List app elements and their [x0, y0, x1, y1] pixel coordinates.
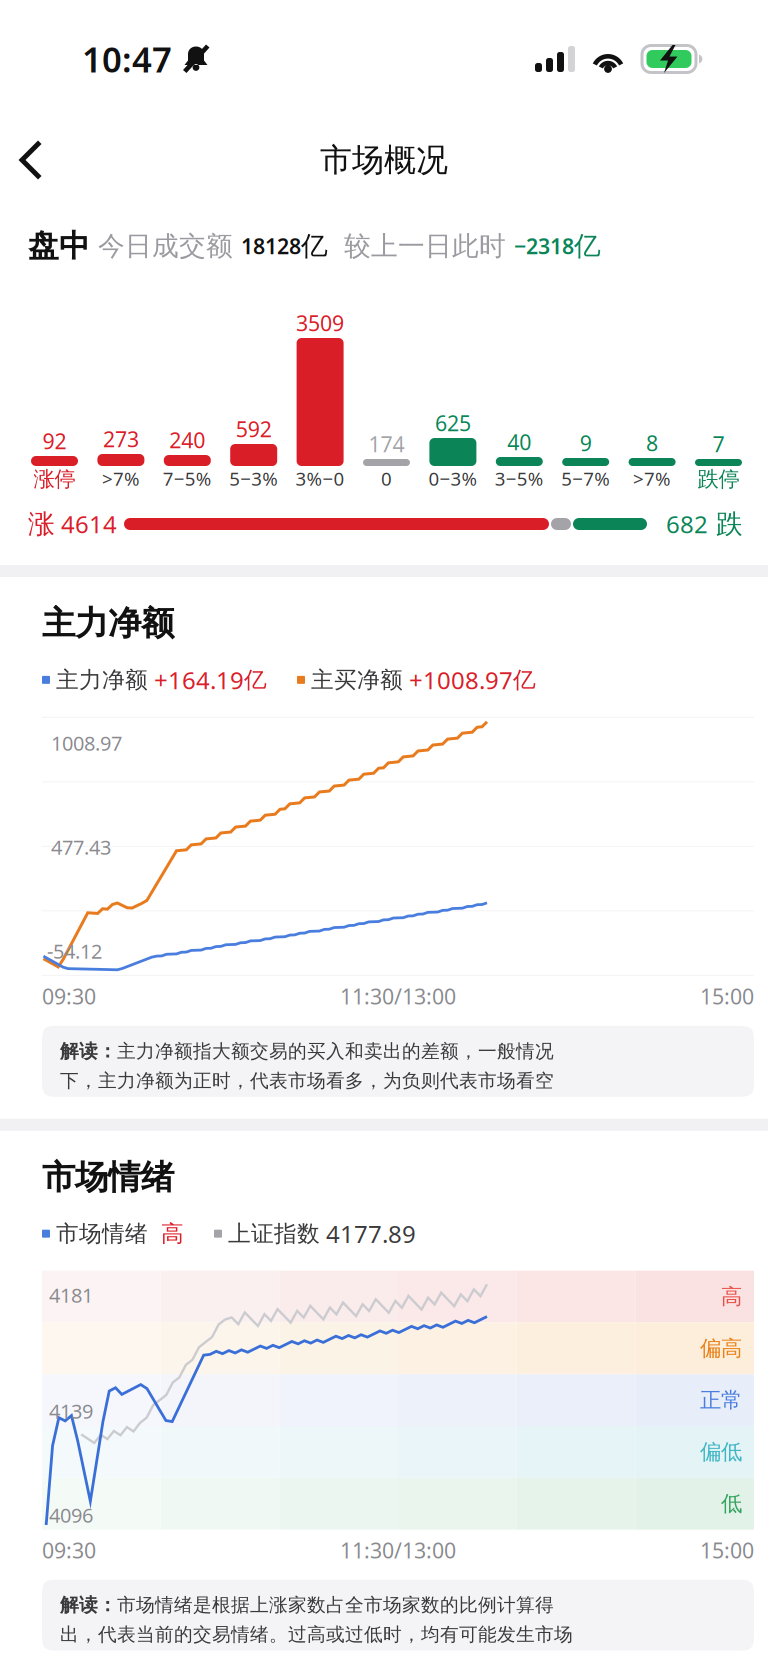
staticText: 主买净额 — [311, 666, 403, 694]
staticText: 高 — [721, 1283, 742, 1310]
staticText: 上证指数 — [228, 1220, 320, 1248]
staticText: 下，主力净额为正时，代表市场看多，为负则代表市场看空 — [60, 1069, 554, 1092]
staticText: 174 — [368, 430, 404, 458]
staticText: 10:47 — [82, 36, 172, 82]
staticText: 11:30/13:00 — [340, 1536, 456, 1564]
staticText: 5−7% — [561, 466, 610, 491]
staticText: 240 — [169, 426, 205, 454]
staticText: 4096 — [49, 1502, 93, 1528]
staticText: 15:00 — [700, 982, 754, 1010]
staticText: 11:30/13:00 — [340, 982, 456, 1010]
staticText: 9 — [580, 429, 592, 457]
staticText: 477.43 — [51, 834, 111, 860]
staticText: 出，代表当前的交易情绪。过高或过低时，均有可能发生市场 — [60, 1623, 573, 1646]
staticText: 解读： — [60, 1040, 117, 1063]
staticText: 今日成交额 — [90, 230, 241, 262]
staticText: 主力净额 — [42, 603, 174, 644]
staticText: 4139 — [49, 1398, 93, 1424]
staticText: 主力净额 — [56, 666, 148, 694]
staticText: 92 — [42, 427, 66, 455]
staticText: 较上一日此时 — [328, 230, 514, 262]
staticText: 0 — [381, 466, 392, 491]
staticText: 3−5% — [495, 466, 544, 491]
staticText: 5−3% — [229, 466, 278, 491]
staticText: 低 — [721, 1491, 742, 1517]
staticText: 偏低 — [700, 1439, 742, 1465]
staticText: 8 — [646, 429, 658, 457]
staticText: +1008.97 — [403, 664, 513, 696]
staticText: 625 — [435, 409, 471, 437]
staticText: 15:00 — [700, 1536, 754, 1564]
staticText: 正常 — [700, 1387, 742, 1413]
staticText: 主力净额指大额交易的买入和卖出的差额，一般情况 — [117, 1040, 554, 1063]
staticText: 跌 — [708, 508, 743, 540]
staticText: 亿 — [574, 230, 601, 262]
staticText: 市场情绪 — [42, 1157, 174, 1198]
staticText: 高 — [154, 1220, 184, 1248]
staticText: 40 — [507, 428, 531, 456]
button[interactable]: Back — [0, 127, 65, 193]
staticText: 682 — [666, 508, 708, 540]
staticText: 4177.89 — [320, 1218, 416, 1250]
staticText: −2318 — [514, 232, 574, 260]
staticText: 3%−0 — [296, 466, 345, 491]
staticText: 亿 — [301, 230, 328, 262]
staticText: 跌停 — [697, 466, 739, 492]
staticText: 亿 — [244, 666, 267, 694]
staticText: 18128 — [241, 232, 301, 260]
staticText: 市场情绪 — [56, 1220, 148, 1248]
staticText: 7−5% — [163, 466, 212, 491]
staticText: 0−3% — [428, 466, 477, 491]
staticText: >7% — [102, 466, 140, 491]
staticText: 涨 — [28, 508, 55, 540]
staticText: 解读： — [60, 1594, 117, 1617]
staticText: 涨停 — [33, 466, 75, 492]
staticText: 亿 — [513, 666, 536, 694]
staticText: 市场情绪是根据上涨家数占全市场家数的比例计算得 — [117, 1594, 554, 1617]
staticText: 3509 — [296, 309, 344, 337]
staticText: 273 — [103, 425, 139, 453]
staticText: 1008.97 — [51, 730, 122, 756]
staticText: 盘中 — [28, 227, 90, 265]
staticText: 4181 — [49, 1282, 93, 1308]
staticText: 592 — [236, 415, 272, 443]
staticText: 市场概况 — [320, 140, 448, 180]
staticText: 09:30 — [42, 982, 96, 1010]
staticText: 09:30 — [42, 1536, 96, 1564]
staticText: +164.19 — [148, 664, 244, 696]
staticText: 4614 — [55, 508, 117, 540]
staticText: >7% — [633, 466, 671, 491]
staticText: -54.12 — [47, 938, 102, 964]
staticText: 偏高 — [700, 1335, 742, 1361]
staticText: 7 — [712, 430, 724, 458]
